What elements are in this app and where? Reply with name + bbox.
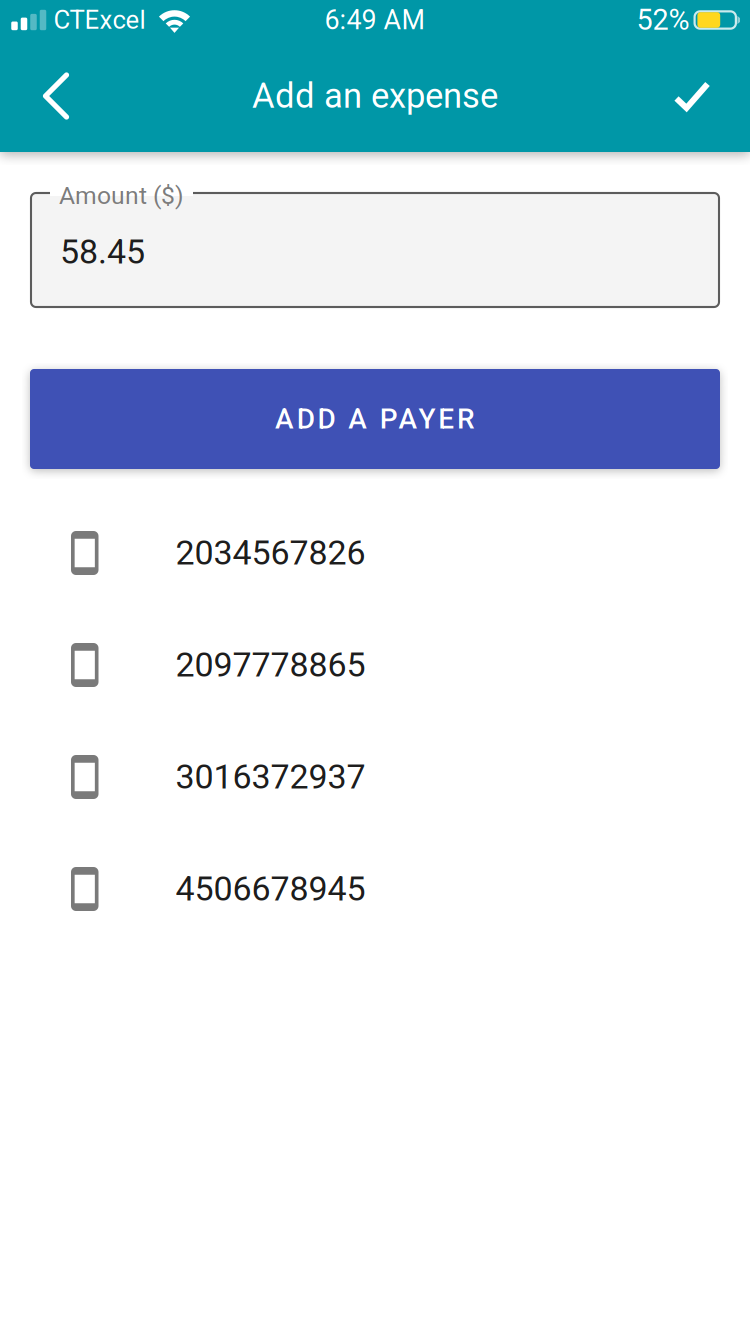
button[interactable]: Back — [8, 40, 104, 152]
button[interactable]: Save — [644, 40, 740, 152]
staticText: 3016372937 — [175, 757, 365, 797]
staticText: 4506678945 — [175, 869, 365, 909]
staticText: Add an expense — [252, 76, 498, 116]
staticText: 6:49 AM — [324, 4, 425, 36]
button[interactable]: 2097778865 — [0, 609, 750, 721]
staticText: 58.45 — [60, 232, 145, 272]
staticText: ADD A PAYER — [275, 403, 475, 435]
staticText: Amount ($) — [59, 181, 184, 210]
button[interactable]: 3016372937 — [0, 721, 750, 833]
staticText: 2034567826 — [175, 533, 365, 573]
staticText: 52% — [637, 3, 690, 37]
button[interactable]: 2034567826 — [0, 497, 750, 609]
button[interactable]: ADD A PAYER — [30, 369, 720, 469]
staticText: CTExcel — [53, 5, 145, 35]
button[interactable]: 4506678945 — [0, 833, 750, 945]
staticText: 2097778865 — [175, 645, 365, 685]
